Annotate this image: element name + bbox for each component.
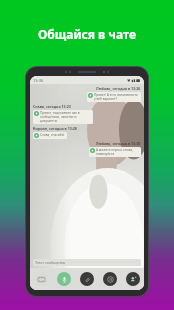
button[interactable]: Attach bbox=[80, 272, 94, 286]
staticText: Привет! А есть возможность у вёб вариант… bbox=[94, 93, 138, 101]
staticText: Слава, спасибо! bbox=[40, 133, 65, 137]
button[interactable]: Sticker bbox=[103, 272, 117, 286]
button[interactable]: Keyboard bbox=[34, 272, 48, 286]
button[interactable]: Текст сообщения bbox=[33, 259, 141, 266]
button[interactable]: Привет, подскажите как в сообщениях, зам… bbox=[33, 110, 93, 124]
staticText: Общайся в чате bbox=[38, 26, 136, 42]
staticText: Кирилл, сегодня в 13:28 bbox=[33, 126, 77, 131]
staticText: Любовь, сегодня в 13:26 bbox=[96, 86, 141, 91]
button[interactable]: Слава, спасибо! bbox=[33, 132, 67, 139]
button[interactable]: Voice message bbox=[57, 272, 71, 286]
button[interactable]: А можете перечь слова, пожалуйста bbox=[89, 147, 141, 157]
staticText: А можете перечь слова, пожалуйста bbox=[96, 148, 133, 156]
staticText: Любовь, сегодня в 13:30 bbox=[96, 141, 141, 146]
staticText: Текст сообщения bbox=[35, 260, 65, 265]
staticText: Привет, подскажите как в сообщениях, зам… bbox=[40, 111, 92, 123]
button[interactable]: Привет! А есть возможность у вёб вариант… bbox=[87, 92, 141, 102]
staticText: Слава, сегодня 13:23 bbox=[33, 104, 71, 109]
staticText: 13:36 bbox=[33, 78, 44, 83]
button[interactable]: Add contact bbox=[126, 272, 140, 286]
